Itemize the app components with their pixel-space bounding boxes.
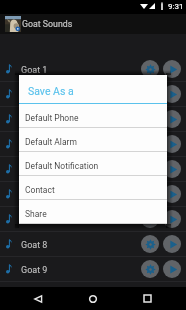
button[interactable]: Play — [163, 210, 181, 228]
button[interactable]: Default Notification — [19, 152, 167, 175]
button[interactable]: Settings — [141, 135, 159, 153]
staticText: Share — [25, 209, 47, 219]
staticText: Goat 6 — [21, 190, 48, 201]
button[interactable]: Settings — [141, 210, 159, 228]
button[interactable]: Play — [163, 160, 181, 178]
staticText: Goat 3 — [21, 115, 48, 126]
staticText: Save As a — [28, 85, 74, 97]
button[interactable]: Default Phone — [19, 104, 167, 127]
staticText: Goat Sounds — [22, 19, 73, 29]
button[interactable]: Settings — [141, 185, 159, 203]
staticText: Goat 2 — [21, 90, 48, 101]
button[interactable]: Play — [163, 110, 181, 128]
staticText: Default Alarm — [25, 137, 77, 147]
button[interactable]: Goat 7 — [0, 207, 186, 231]
staticText: Contact — [25, 185, 55, 195]
staticText: Default Phone — [25, 113, 79, 123]
button[interactable]: Goat 4 — [0, 132, 186, 156]
button[interactable]: Settings — [141, 160, 159, 178]
button[interactable]: Back — [28, 287, 48, 310]
button[interactable]: Settings — [141, 260, 159, 278]
button[interactable]: Play — [163, 60, 181, 78]
button[interactable]: Contact — [19, 176, 167, 199]
staticText: Goat 7 — [21, 215, 48, 226]
button[interactable]: Recents — [137, 287, 157, 310]
button[interactable]: Goat Sounds app icon — [5, 16, 21, 32]
staticText: Goat 9 — [21, 265, 48, 276]
staticText: Goat 1 — [21, 65, 48, 76]
button[interactable]: Settings — [141, 110, 159, 128]
button[interactable]: Goat 3 — [0, 107, 186, 131]
button[interactable]: Play — [163, 185, 181, 203]
button[interactable]: Goat 9 — [0, 257, 186, 281]
button[interactable]: Play — [163, 260, 181, 278]
button[interactable]: Settings — [141, 60, 159, 78]
button[interactable]: Share — [19, 200, 167, 223]
button[interactable]: Settings — [141, 235, 159, 253]
staticText: 9:31 — [168, 2, 184, 11]
button[interactable]: Play — [163, 135, 181, 153]
button[interactable]: Play — [163, 85, 181, 103]
button[interactable]: Play — [163, 235, 181, 253]
button[interactable]: Goat 8 — [0, 232, 186, 256]
button[interactable]: Goat 6 — [0, 182, 186, 206]
button[interactable]: Default Alarm — [19, 128, 167, 151]
button[interactable]: Home — [83, 287, 103, 310]
staticText: Default Notification — [25, 161, 99, 171]
button[interactable]: Goat 1 — [0, 57, 186, 81]
staticText: Goat 4 — [21, 140, 48, 151]
button[interactable]: Goat 2 — [0, 82, 186, 106]
staticText: Goat 5 — [21, 165, 48, 176]
button[interactable]: Goat 5 — [0, 157, 186, 181]
staticText: Goat 8 — [21, 240, 48, 251]
